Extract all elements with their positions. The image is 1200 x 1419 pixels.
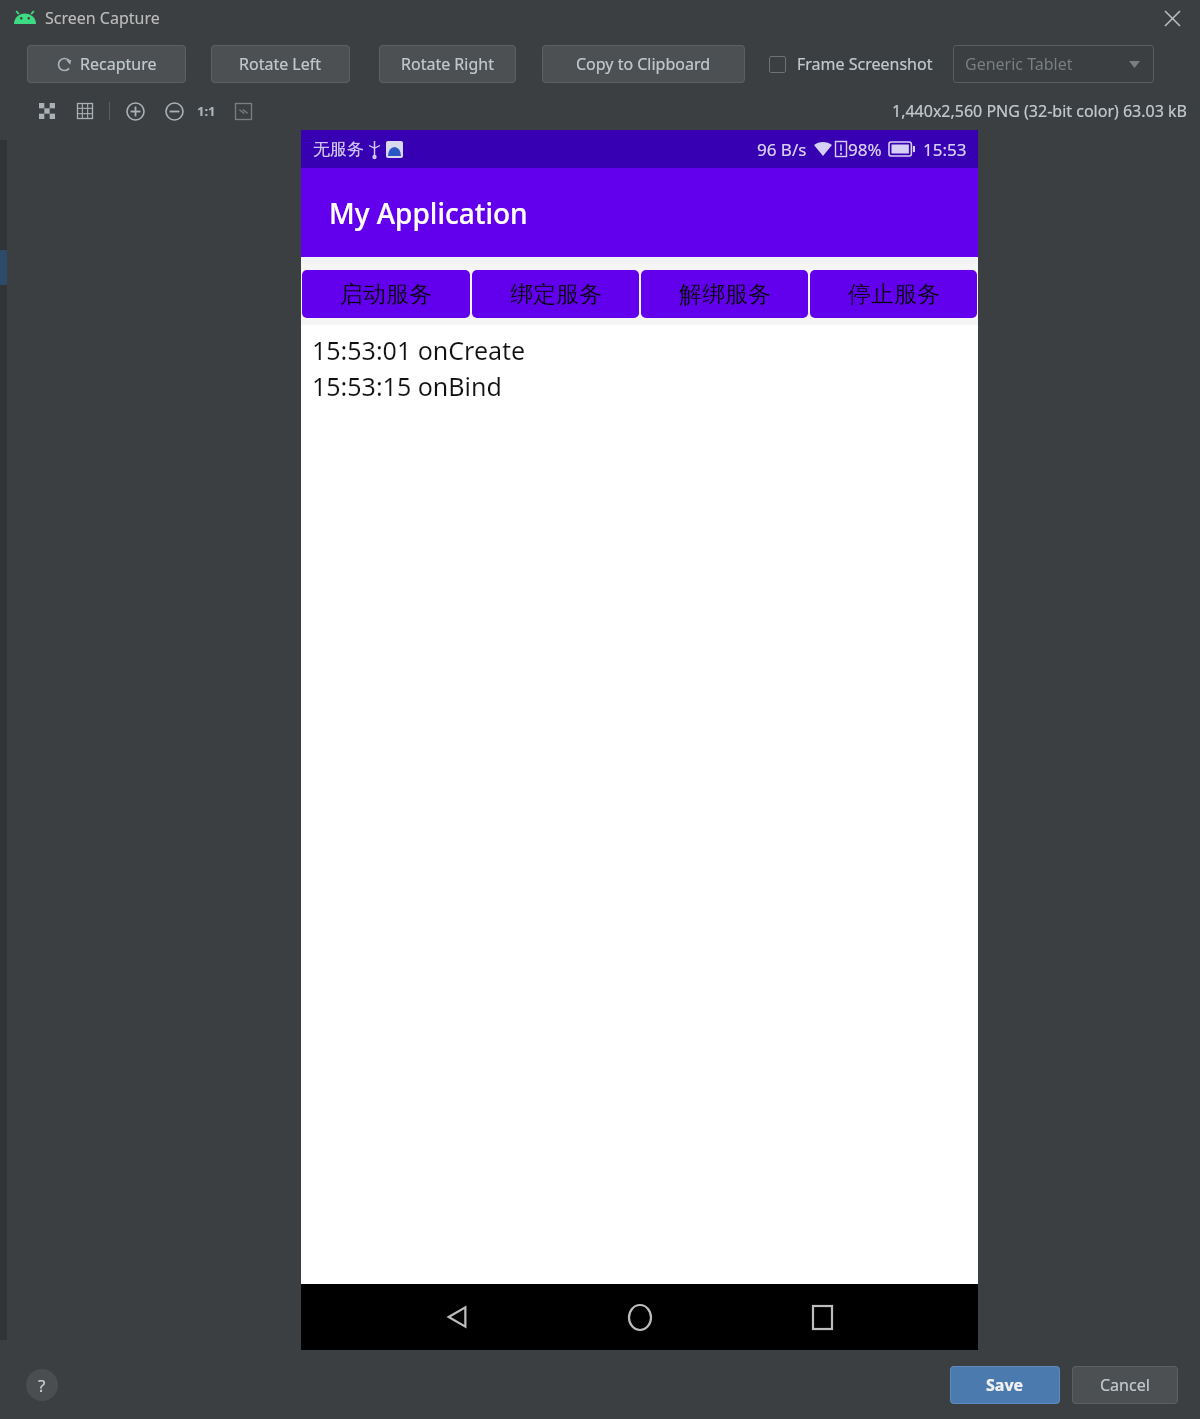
- staticText: Rotate Left: [239, 53, 322, 75]
- button[interactable]: Zoom in: [121, 97, 149, 125]
- button[interactable]: Frame Screenshot: [769, 45, 933, 83]
- button[interactable]: Save: [950, 1366, 1060, 1404]
- button[interactable]: Help: [26, 1369, 58, 1401]
- button[interactable]: Copy to Clipboard: [542, 45, 745, 83]
- button[interactable]: 解绑服务: [641, 270, 808, 318]
- staticText: Save: [986, 1374, 1024, 1396]
- staticText: 无服务: [313, 139, 364, 160]
- staticText: Copy to Clipboard: [576, 53, 711, 75]
- button[interactable]: 绑定服务: [472, 270, 639, 318]
- staticText: 启动服务: [340, 280, 432, 309]
- staticText: Rotate Right: [401, 53, 494, 75]
- staticText: 15:53:01 onCreate: [312, 333, 526, 367]
- button[interactable]: Rotate Left: [211, 45, 350, 83]
- button[interactable]: Cancel: [1072, 1366, 1178, 1404]
- button[interactable]: Back: [431, 1291, 483, 1343]
- button[interactable]: Home: [614, 1291, 666, 1343]
- staticText: Generic Tablet: [965, 53, 1073, 75]
- staticText: 15:53: [923, 138, 967, 161]
- button[interactable]: Grid: [72, 98, 98, 124]
- button[interactable]: Recapture: [27, 45, 186, 83]
- staticText: ?: [38, 1374, 46, 1397]
- button[interactable]: Fit to window: [230, 98, 256, 124]
- button[interactable]: Actual size: [197, 98, 216, 124]
- staticText: 96 B/s: [757, 138, 807, 161]
- button[interactable]: Rotate Right: [379, 45, 516, 83]
- staticText: Recapture: [80, 53, 157, 75]
- button[interactable]: Transparency grid: [34, 98, 60, 124]
- button[interactable]: Recent apps: [796, 1291, 848, 1343]
- staticText: 绑定服务: [510, 280, 602, 309]
- staticText: 1:1: [197, 102, 216, 120]
- staticText: Frame Screenshot: [797, 53, 933, 75]
- staticText: Cancel: [1100, 1374, 1150, 1396]
- button[interactable]: 停止服务: [810, 270, 977, 318]
- staticText: 15:53:15 onBind: [312, 369, 502, 403]
- button[interactable]: Close: [1158, 4, 1186, 32]
- staticText: My Application: [329, 194, 528, 232]
- staticText: 1,440x2,560 PNG (32-bit color) 63.03 kB: [892, 100, 1187, 122]
- staticText: 停止服务: [848, 280, 940, 309]
- button[interactable]: Generic Tablet: [953, 45, 1154, 83]
- button[interactable]: Zoom out: [160, 97, 188, 125]
- button[interactable]: 启动服务: [302, 270, 470, 318]
- staticText: 98%: [848, 138, 882, 161]
- staticText: Screen Capture: [45, 7, 160, 29]
- staticText: 解绑服务: [679, 280, 771, 309]
